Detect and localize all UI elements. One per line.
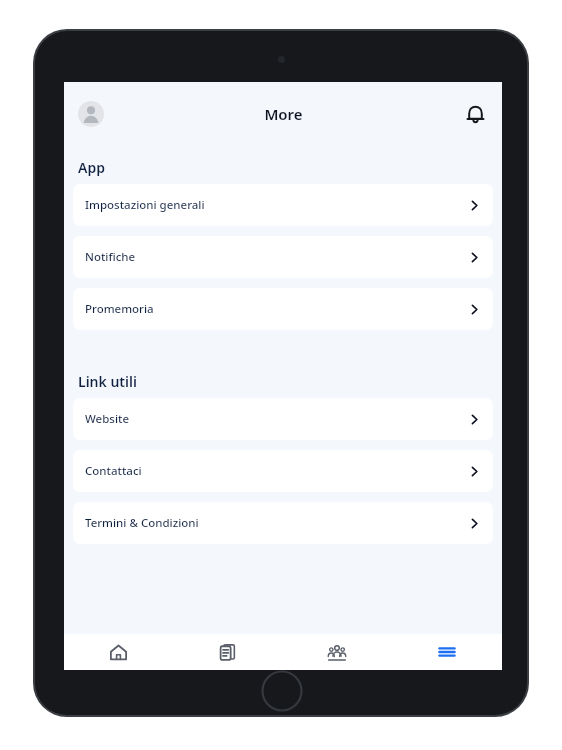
button[interactable]: Impostazioni generali (73, 184, 493, 226)
button[interactable]: Profile (78, 101, 104, 127)
button[interactable]: Community (282, 634, 392, 670)
staticText: Impostazioni generali (85, 197, 205, 213)
staticText: Contattaci (85, 463, 142, 479)
button[interactable]: Promemoria (73, 288, 493, 330)
button[interactable]: Notifiche (73, 236, 493, 278)
button[interactable]: Home (64, 634, 173, 670)
staticText: Promemoria (85, 301, 154, 317)
staticText: Notifiche (85, 249, 136, 265)
staticText: Termini & Condizioni (85, 515, 199, 531)
button[interactable]: Menu (392, 634, 502, 670)
button[interactable]: Termini & Condizioni (73, 502, 493, 544)
staticText: Website (85, 411, 130, 427)
button[interactable]: Website (73, 398, 493, 440)
staticText: More (264, 104, 303, 124)
button[interactable]: Documents (173, 634, 282, 670)
button[interactable]: Notifications (460, 99, 490, 129)
button[interactable]: Contattaci (73, 450, 493, 492)
staticText: Link utili (78, 372, 137, 391)
staticText: App (78, 158, 105, 177)
